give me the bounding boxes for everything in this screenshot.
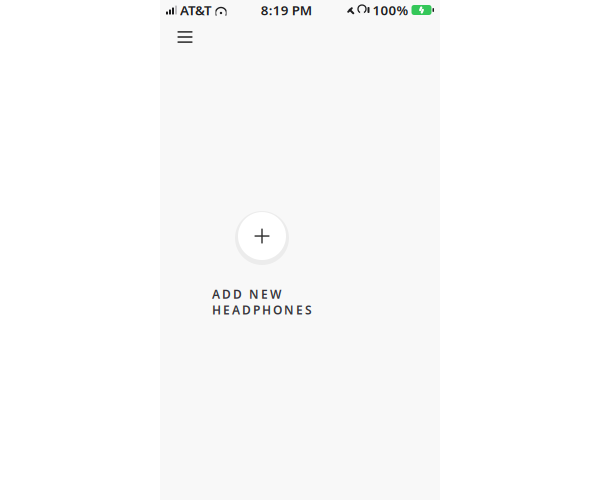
button[interactable]: ADD NEW HEADPHONES [212,206,388,302]
staticText: 100% [372,1,408,19]
staticText: ADD NEW HEADPHONES [212,286,312,318]
staticText: AT&T [180,1,212,19]
button[interactable]: Menu [168,22,202,52]
staticText: 8:19 PM [261,1,312,19]
